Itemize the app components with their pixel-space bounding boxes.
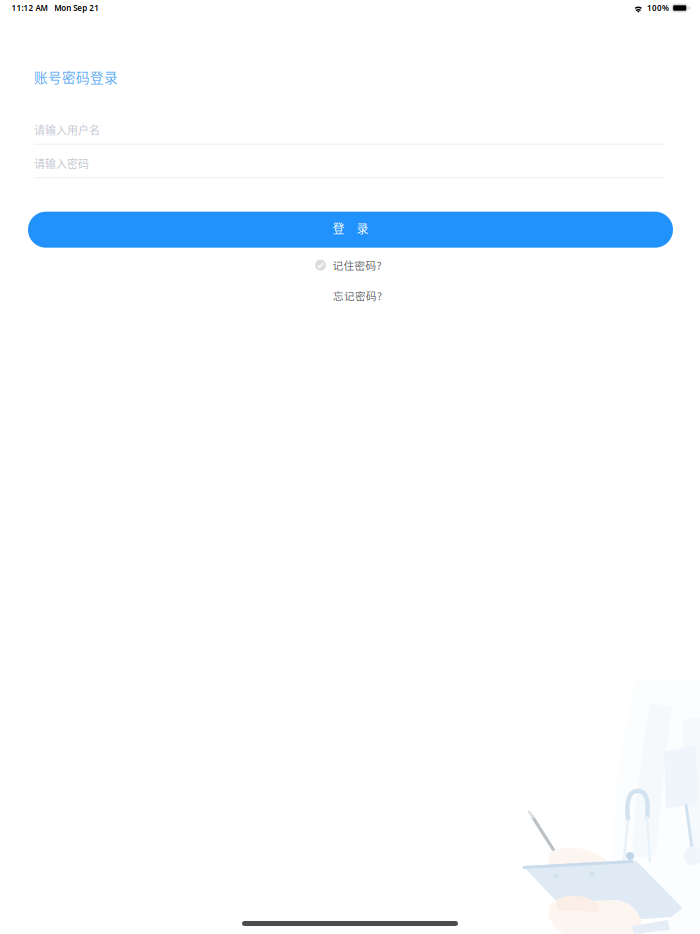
- staticText: 请输入用户名: [34, 122, 100, 138]
- staticText: 账号密码登录: [34, 67, 118, 87]
- button[interactable]: 记住密码?: [315, 257, 381, 273]
- staticText: 11:12 AM: [11, 3, 47, 13]
- staticText: 登 录: [332, 219, 368, 237]
- staticText: 忘记密码?: [333, 288, 382, 303]
- staticText: 请输入密码: [34, 155, 89, 171]
- staticText: Mon Sep 21: [54, 3, 99, 13]
- staticText: 100%: [647, 3, 669, 13]
- button[interactable]: 忘记密码?: [333, 288, 382, 304]
- staticText: 记住密码?: [332, 257, 381, 273]
- button[interactable]: 登 录: [28, 212, 673, 248]
